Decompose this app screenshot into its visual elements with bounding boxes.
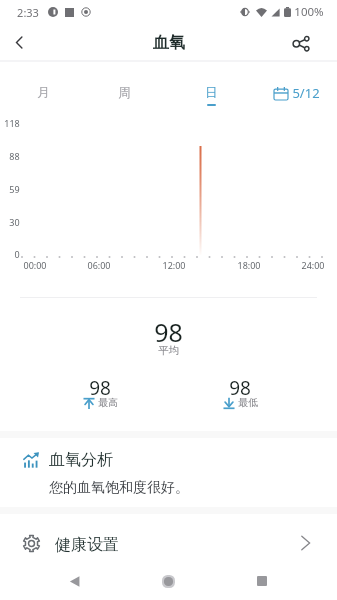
- button[interactable]: Home: [148, 561, 188, 600]
- staticText: 24:00: [301, 259, 325, 271]
- staticText: 血氧分析: [49, 450, 113, 470]
- staticText: 00:00: [23, 259, 47, 271]
- staticText: 平均: [158, 344, 179, 357]
- button[interactable]: Recent apps: [242, 561, 282, 600]
- staticText: 118: [4, 117, 20, 129]
- staticText: 2:33: [17, 5, 39, 20]
- staticText: 59: [9, 183, 20, 195]
- staticText: 日: [205, 85, 218, 101]
- button[interactable]: 日: [181, 85, 241, 113]
- staticText: 100%: [294, 4, 324, 20]
- staticText: 5/12: [292, 84, 320, 102]
- button[interactable]: 周: [94, 85, 154, 113]
- staticText: 18:00: [237, 259, 261, 271]
- staticText: 98: [89, 375, 111, 401]
- staticText: 健康设置: [55, 535, 119, 555]
- staticText: 周: [118, 85, 131, 101]
- staticText: 最高: [98, 396, 118, 409]
- button[interactable]: 健康设置: [0, 514, 337, 564]
- button[interactable]: Back: [54, 561, 94, 600]
- staticText: 06:00: [87, 259, 111, 271]
- staticText: 您的血氧饱和度很好。: [49, 479, 189, 497]
- button[interactable]: Share: [279, 24, 323, 63]
- button[interactable]: Back: [0, 23, 41, 62]
- staticText: 月: [37, 85, 50, 101]
- staticText: 血氧: [153, 33, 185, 53]
- staticText: 30: [9, 216, 20, 228]
- button[interactable]: 月: [13, 85, 73, 113]
- staticText: 88: [9, 150, 20, 162]
- staticText: 98: [229, 375, 251, 401]
- button[interactable]: 5/12: [274, 83, 334, 103]
- staticText: 0: [14, 248, 20, 260]
- staticText: 最低: [238, 396, 258, 409]
- staticText: 98: [154, 315, 183, 349]
- staticText: 12:00: [162, 259, 186, 271]
- button[interactable]: 血氧分析: [0, 437, 337, 507]
